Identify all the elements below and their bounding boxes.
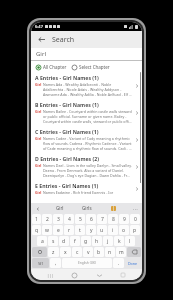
- button[interactable]: Emoji: [110, 205, 117, 212]
- button[interactable]: r: [64, 225, 74, 235]
- staticText: Girl: [35, 136, 43, 141]
- button[interactable]: k: [114, 236, 124, 246]
- button[interactable]: Girl: [31, 48, 142, 60]
- button[interactable]: Shift: [32, 247, 47, 257]
- staticText: u: [100, 227, 104, 234]
- button[interactable]: E Entries - Girl Names (1): [31, 180, 142, 197]
- staticText: 1: [35, 216, 38, 223]
- button[interactable]: c: [72, 247, 82, 257]
- button[interactable]: 0: [130, 214, 140, 224]
- button[interactable]: Girl: [56, 205, 64, 211]
- button[interactable]: English (UK): [62, 258, 112, 268]
- button[interactable]: w: [42, 225, 52, 235]
- staticText: f: [74, 238, 76, 245]
- button[interactable]: y: [86, 225, 96, 235]
- staticText: z: [52, 249, 55, 256]
- button[interactable]: Recents: [45, 270, 55, 280]
- button[interactable]: t: [75, 225, 85, 235]
- button[interactable]: a: [37, 236, 47, 246]
- button[interactable]: b: [94, 247, 104, 257]
- button[interactable]: s: [48, 236, 58, 246]
- button[interactable]: C Entries - Girl Names (1): [31, 126, 142, 153]
- staticText: 2: [46, 216, 49, 223]
- button[interactable]: !#1: [32, 258, 49, 268]
- staticText: r: [68, 227, 71, 234]
- staticText: y: [90, 227, 93, 234]
- button[interactable]: ,: [50, 258, 61, 268]
- staticText: Select Chapter: [79, 64, 110, 70]
- staticText: 7: [101, 216, 104, 223]
- staticText: d: [62, 238, 66, 245]
- button[interactable]: Girls: [82, 205, 92, 211]
- button[interactable]: p: [130, 225, 140, 235]
- staticText: g: [84, 238, 88, 245]
- staticText: 8: [112, 216, 115, 223]
- staticText: Names Ada - Wealthy Adalbeonti - Noble A…: [43, 82, 132, 97]
- button[interactable]: z: [48, 247, 59, 257]
- button[interactable]: q: [32, 225, 41, 235]
- button[interactable]: .: [113, 258, 124, 268]
- button[interactable]: 1: [32, 214, 41, 224]
- button[interactable]: D Entries - Girl Names (2): [31, 153, 142, 180]
- button[interactable]: n: [105, 247, 115, 257]
- button[interactable]: d: [59, 236, 69, 246]
- button[interactable]: More options: [132, 205, 139, 212]
- staticText: w: [45, 227, 49, 234]
- staticText: Names Cadee - Variant of Cady meaning a …: [43, 136, 132, 151]
- button[interactable]: v: [83, 247, 93, 257]
- button[interactable]: g: [81, 236, 91, 246]
- button[interactable]: Home: [69, 270, 79, 280]
- button[interactable]: All Chapter: [35, 63, 68, 71]
- button[interactable]: 5: [75, 214, 85, 224]
- staticText: q: [35, 227, 39, 234]
- button[interactable]: Back: [36, 34, 47, 45]
- staticText: t: [79, 227, 81, 234]
- button[interactable]: 9: [119, 214, 129, 224]
- staticText: i: [112, 227, 114, 234]
- button[interactable]: Done: [125, 258, 141, 268]
- staticText: Girl: [36, 50, 46, 58]
- staticText: Girl: [35, 190, 43, 195]
- button[interactable]: B Entries - Girl Names (1): [31, 99, 142, 126]
- staticText: Done: [128, 261, 138, 266]
- staticText: l: [129, 238, 131, 245]
- staticText: .: [118, 260, 120, 267]
- button[interactable]: Select Chapter: [71, 63, 111, 71]
- button[interactable]: j: [103, 236, 113, 246]
- button[interactable]: 6: [86, 214, 96, 224]
- staticText: ⋯: [133, 206, 138, 212]
- staticText: All Chapter: [43, 64, 67, 70]
- button[interactable]: Backspace: [127, 247, 141, 257]
- button[interactable]: A Entries - Girl Names (1): [31, 72, 142, 99]
- button[interactable]: 7: [97, 214, 107, 224]
- button[interactable]: f: [70, 236, 80, 246]
- staticText: e: [57, 227, 60, 234]
- button[interactable]: e: [53, 225, 63, 235]
- button[interactable]: 2: [42, 214, 52, 224]
- button[interactable]: Hide keyboard: [118, 270, 128, 280]
- staticText: English (UK): [78, 261, 96, 265]
- staticText: 5: [79, 216, 82, 223]
- staticText: 0: [134, 216, 137, 223]
- staticText: Search: [52, 35, 75, 45]
- button[interactable]: u: [97, 225, 107, 235]
- staticText: Names Dael - Lives in the valley Daelyn …: [43, 163, 132, 178]
- staticText: v: [87, 249, 90, 256]
- button[interactable]: h: [92, 236, 102, 246]
- staticText: m: [119, 249, 124, 256]
- staticText: 6:47: [35, 24, 43, 29]
- button[interactable]: Previous: [34, 205, 41, 212]
- button[interactable]: 4: [64, 214, 74, 224]
- staticText: ,: [55, 260, 57, 267]
- button[interactable]: i: [108, 225, 118, 235]
- button[interactable]: 8: [108, 214, 118, 224]
- staticText: D Entries - Girl Names (2): [35, 155, 100, 162]
- staticText: 9: [123, 216, 126, 223]
- button[interactable]: m: [116, 247, 126, 257]
- button[interactable]: Back: [94, 270, 104, 280]
- button[interactable]: l: [125, 236, 135, 246]
- staticText: A Entries - Girl Names (1): [35, 74, 99, 81]
- button[interactable]: 3: [53, 214, 63, 224]
- button[interactable]: o: [119, 225, 129, 235]
- button[interactable]: x: [60, 247, 71, 257]
